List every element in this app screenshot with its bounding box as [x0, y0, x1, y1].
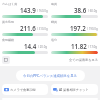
staticText: カメラで食事記録 — [10, 88, 36, 92]
staticText: 14.4 — [24, 42, 37, 50]
staticText: 食物繊維 — [2, 38, 14, 42]
button[interactable]: カメラで食事記録 — [2, 84, 48, 95]
staticText: 脂質 — [51, 2, 57, 6]
button[interactable]: 炭水化物 — [2, 20, 48, 36]
staticText: / 60.0g — [88, 9, 98, 13]
button[interactable]: 塩分 — [51, 38, 98, 54]
staticText: 今日のPFCバランス達成状況を見る — [23, 73, 78, 78]
staticText: 炭水化物 — [2, 20, 14, 24]
button[interactable]: 糖質 — [51, 20, 98, 36]
staticText: 143.9 — [20, 6, 36, 14]
staticText: / 160.0g — [37, 9, 48, 13]
staticText: 38.6 — [74, 6, 87, 14]
button[interactable]: AI 栄養相談チャット — [51, 84, 98, 95]
staticText: / 20.0g — [38, 45, 48, 49]
staticText: たんぱく質 — [2, 2, 18, 6]
staticText: AI 栄養相談チャット — [59, 88, 89, 92]
staticText: 197.2 — [70, 24, 86, 32]
staticText: 全ての栄養素を見る — [69, 58, 98, 62]
button[interactable]: 食物繊維 — [2, 38, 48, 54]
button[interactable]: たんぱく質 — [2, 2, 48, 18]
staticText: 11.82 — [71, 42, 87, 50]
staticText: / 190.0g — [87, 27, 98, 31]
staticText: 211.6 — [20, 24, 36, 32]
staticText: 糖質 — [51, 20, 57, 24]
button[interactable]: 今日のPFCバランス達成状況を見る — [16, 70, 85, 81]
button[interactable]: 写真を追加 — [2, 56, 10, 64]
staticText: 塩分 — [51, 38, 57, 42]
button[interactable]: 脂質 — [51, 2, 98, 18]
staticText: / 310.0g — [37, 27, 48, 31]
staticText: / 7.50g — [88, 45, 98, 49]
